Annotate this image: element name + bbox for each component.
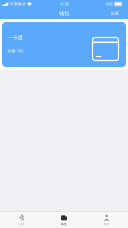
button[interactable]: 钱包 — [43, 212, 85, 228]
staticText: 中国移动 — [10, 1, 26, 6]
staticText: 钱包 — [59, 10, 69, 17]
staticText: 11:29 — [59, 1, 68, 7]
staticText: 运动 — [18, 222, 24, 226]
staticText: 钱包 — [61, 222, 67, 226]
button[interactable]: 一卡通 — [0, 19, 128, 70]
staticText: 50% — [106, 1, 113, 7]
button[interactable]: 我的 — [85, 212, 128, 228]
button[interactable]: 设置 — [106, 8, 128, 19]
button[interactable]: 运动 — [0, 212, 43, 228]
staticText: 我的 — [104, 222, 110, 226]
staticText: 余额: 0元 — [7, 48, 23, 53]
staticText: 设置 — [111, 11, 119, 16]
staticText: 一卡通 — [7, 34, 22, 41]
